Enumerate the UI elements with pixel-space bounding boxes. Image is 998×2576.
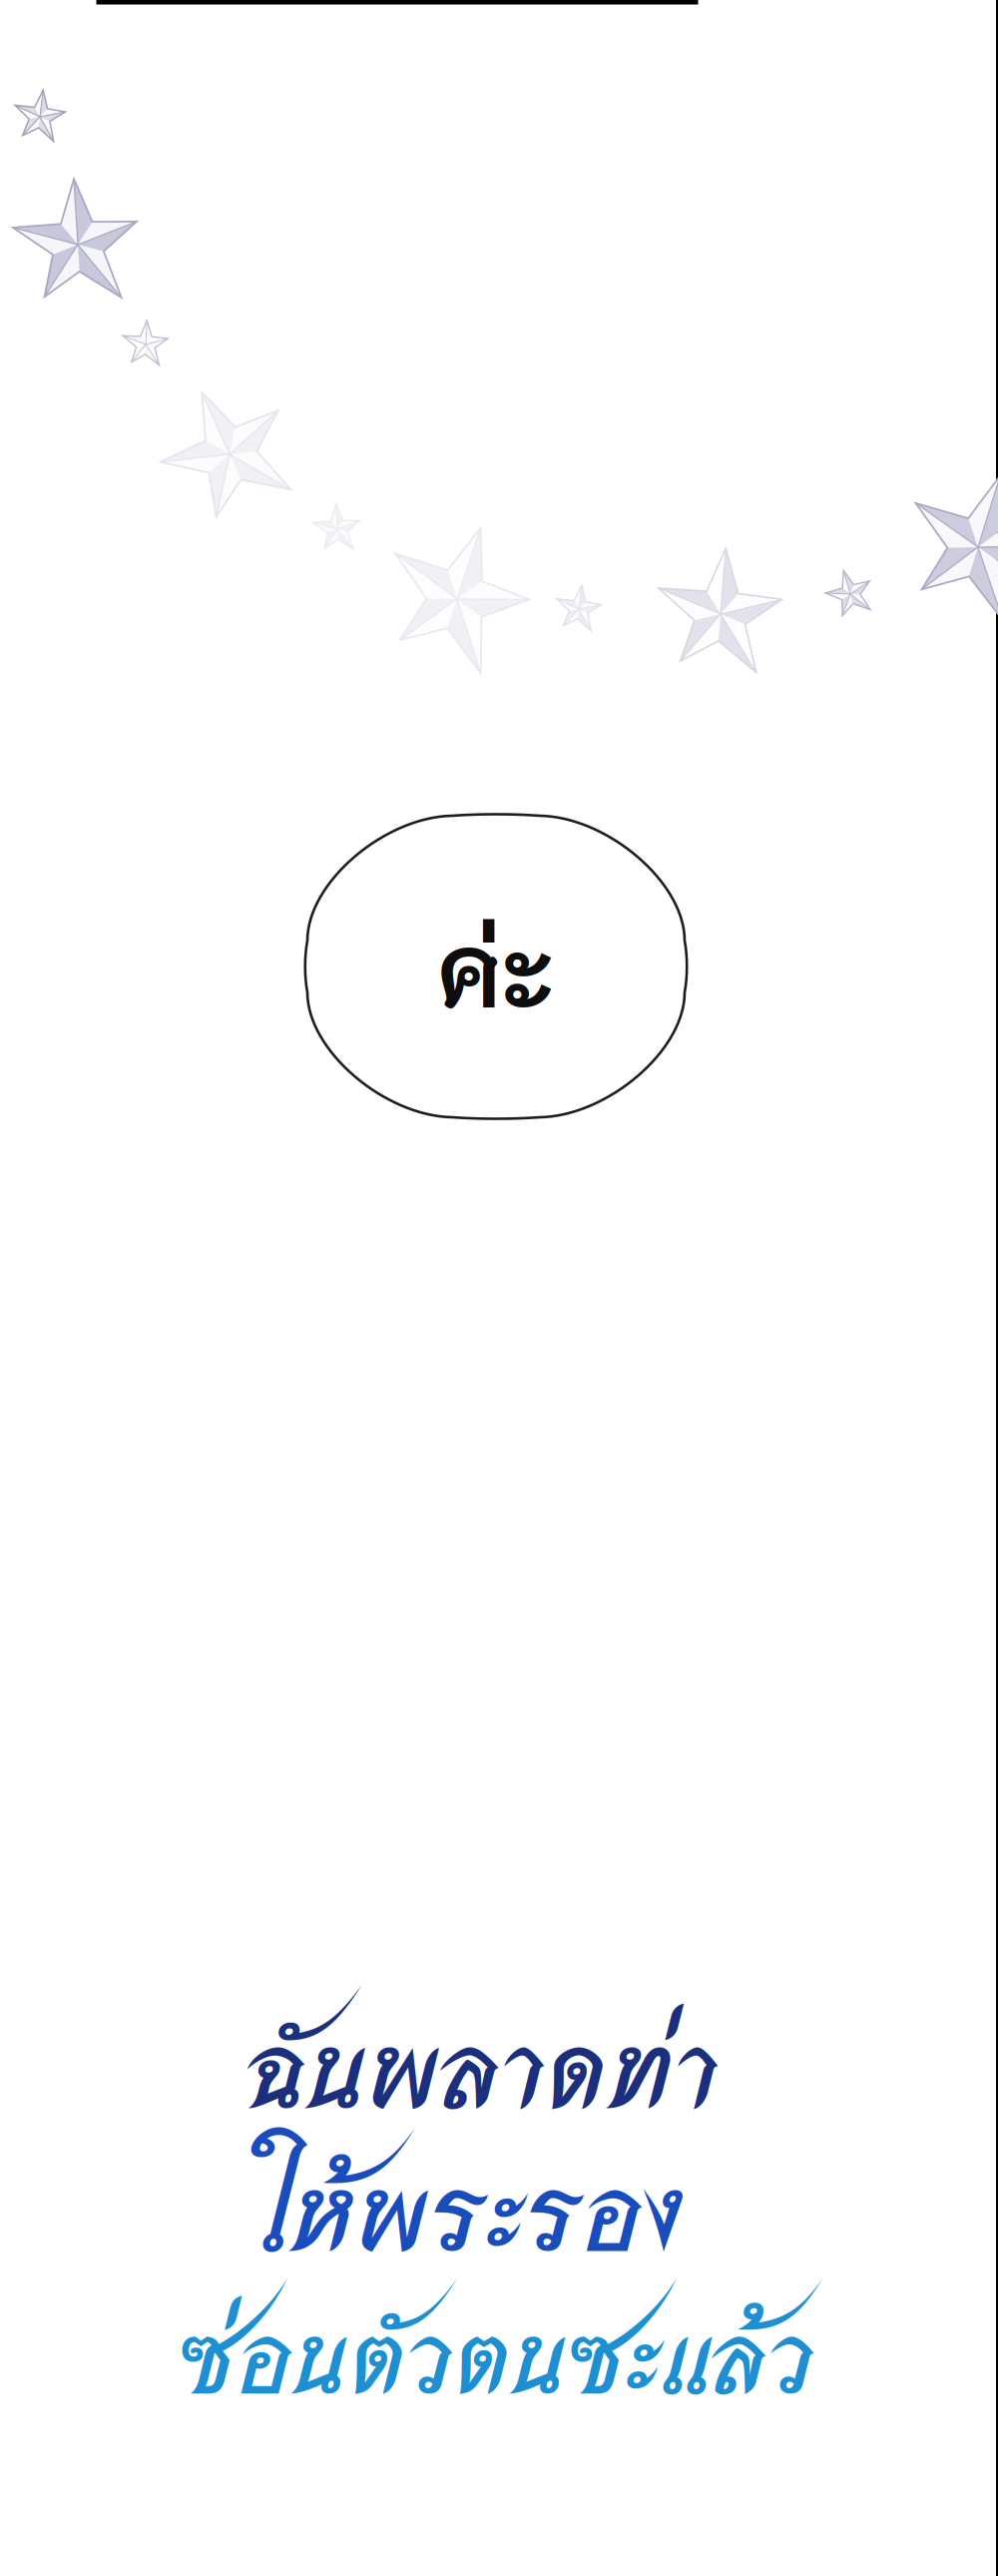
button[interactable]: Comic panel — tap to show reader control… bbox=[0, 0, 998, 2576]
staticText: ค่ะ bbox=[438, 899, 554, 1027]
staticText: ซ่อนตัวตนซะแล้ว bbox=[179, 2287, 815, 2421]
staticText: ให้พระรอง bbox=[257, 2136, 685, 2281]
staticText: ฉันพลาดท่า bbox=[249, 1993, 720, 2138]
